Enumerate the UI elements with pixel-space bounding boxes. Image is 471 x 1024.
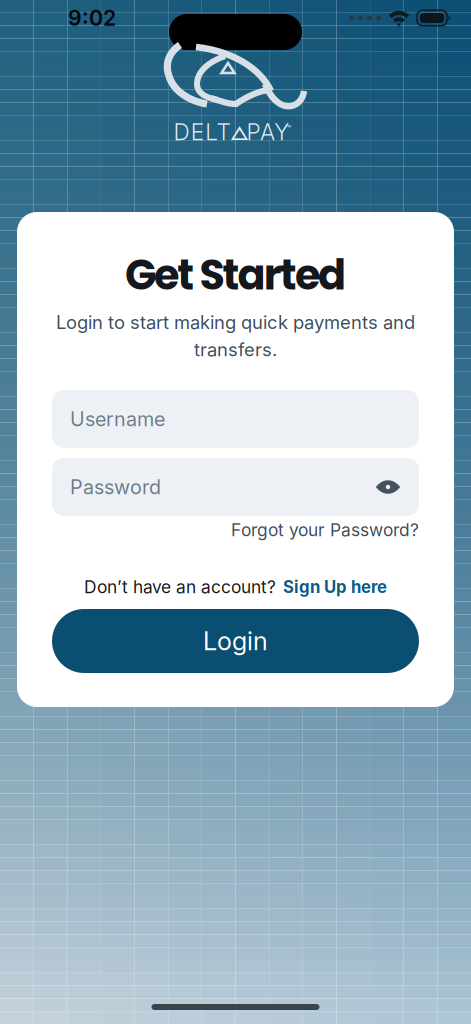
staticText: Login bbox=[203, 626, 268, 656]
button[interactable]: Password bbox=[52, 458, 419, 516]
button[interactable]: Username bbox=[52, 390, 419, 448]
staticText: Login to start making quick payments and bbox=[56, 311, 415, 333]
staticText: Password bbox=[70, 475, 161, 499]
staticText: Sign Up here bbox=[283, 577, 387, 597]
staticText: ™ bbox=[285, 123, 291, 134]
staticText: Get Started bbox=[125, 246, 346, 304]
button[interactable]: Forgot your Password? bbox=[231, 519, 419, 540]
button[interactable]: Login bbox=[52, 609, 419, 673]
staticText: 9:02 bbox=[68, 5, 116, 31]
staticText: Username bbox=[70, 407, 165, 431]
staticText: Forgot your Password? bbox=[231, 519, 419, 540]
staticText: Don’t have an account? bbox=[84, 576, 276, 597]
staticText: DELT PAY bbox=[173, 118, 289, 146]
staticText: transfers. bbox=[194, 338, 277, 361]
button[interactable]: Sign Up here bbox=[283, 577, 387, 597]
